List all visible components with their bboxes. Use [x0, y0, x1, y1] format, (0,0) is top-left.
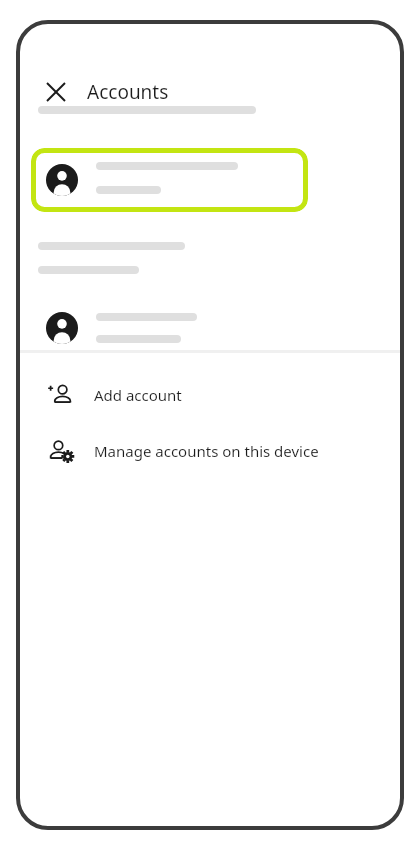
staticText: Manage accounts on this device [94, 441, 319, 461]
staticText: Accounts [87, 79, 169, 105]
button[interactable] [31, 148, 308, 212]
button[interactable] [16, 298, 404, 358]
button[interactable]: Add account [16, 368, 404, 422]
staticText: Add account [94, 385, 182, 405]
button[interactable]: Manage accounts on this device [16, 424, 404, 478]
button[interactable]: Close [34, 70, 78, 114]
